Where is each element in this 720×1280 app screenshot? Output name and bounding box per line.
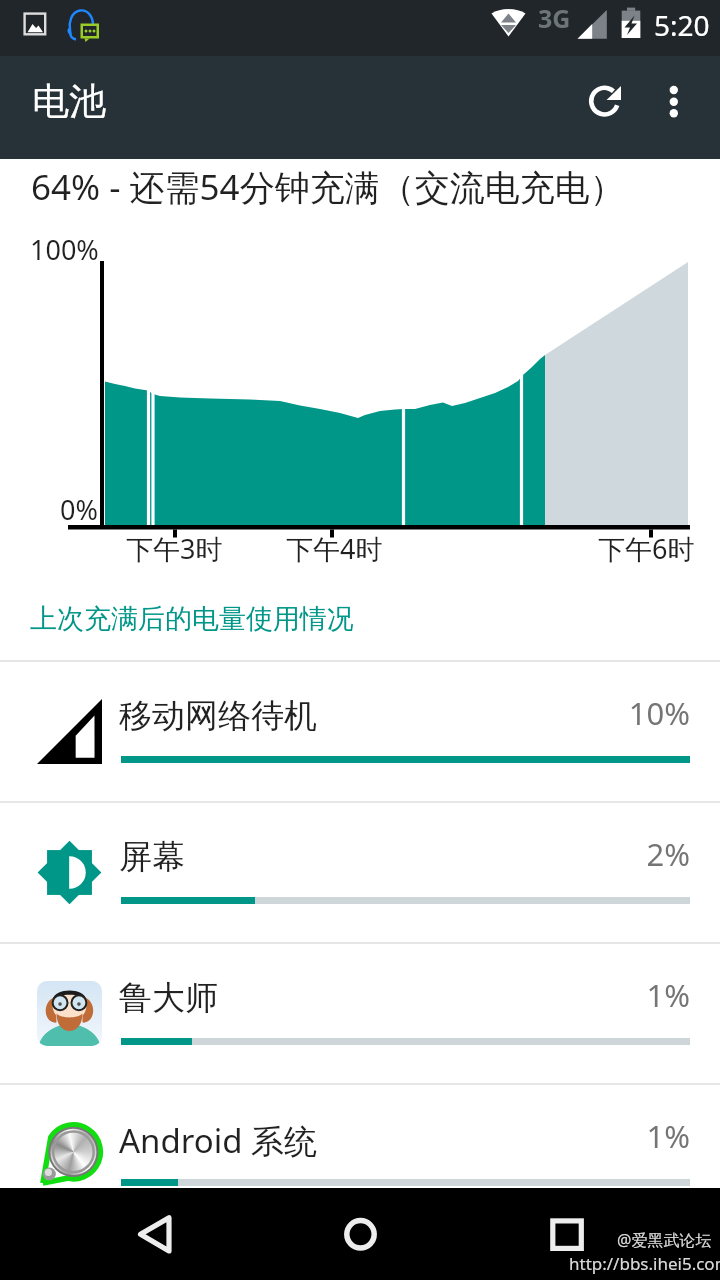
staticText: http://bbs.ihei5.com [569,1252,720,1275]
staticText: 移动网络待机 [119,695,317,737]
staticText: 下午3时 [126,530,223,567]
button[interactable]: Refresh [562,56,648,159]
button[interactable]: 移动网络待机 [0,662,720,801]
button[interactable]: Home [312,1188,408,1280]
staticText: 3G [538,1,571,35]
staticText: 1% [646,974,690,1016]
button[interactable]: Back [106,1188,202,1280]
staticText: 64% - 还需54分钟充满（交流电充电） [31,163,625,211]
staticText: 1% [646,1115,690,1157]
button[interactable]: 上次充满后的电量使用情况 [0,578,720,660]
staticText: @爱黑武论坛 [617,1229,712,1251]
button[interactable]: 鲁大师 [0,944,720,1083]
button[interactable]: Android 系统 [0,1085,720,1224]
button[interactable]: More options [648,56,720,159]
staticText: 下午6时 [598,530,695,567]
button[interactable]: Recents [518,1188,614,1280]
staticText: 上次充满后的电量使用情况 [30,602,354,636]
button[interactable]: 屏幕 [0,803,720,942]
staticText: 电池 [32,78,106,125]
staticText: 10% [628,692,690,734]
staticText: 2% [646,833,690,875]
staticText: 0% [60,491,98,528]
staticText: 5:20 [654,6,710,44]
staticText: 下午4时 [286,530,383,567]
staticText: Android 系统 [119,1118,318,1163]
staticText: 鲁大师 [119,977,218,1019]
staticText: 屏幕 [119,836,185,878]
staticText: 100% [30,231,99,268]
